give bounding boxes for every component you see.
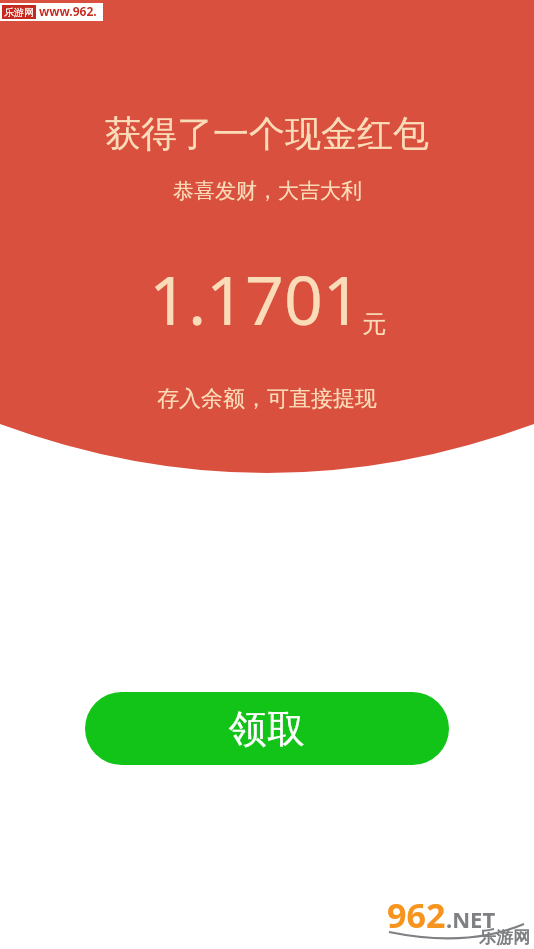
- staticText: 乐游网: [4, 6, 34, 19]
- staticText: 获得了一个现金红包: [105, 111, 429, 156]
- staticText: 962: [387, 892, 446, 938]
- staticText: 恭喜发财，大吉大利: [173, 178, 362, 204]
- staticText: 1.1701: [149, 252, 362, 345]
- staticText: .NET: [446, 904, 496, 934]
- staticText: 元: [362, 309, 386, 339]
- staticText: 乐游网: [479, 927, 530, 948]
- staticText: www.962.net: [39, 3, 103, 21]
- button[interactable]: 领取: [85, 692, 449, 765]
- staticText: 存入余额，可直接提现: [157, 385, 377, 413]
- staticText: 领取: [229, 705, 305, 753]
